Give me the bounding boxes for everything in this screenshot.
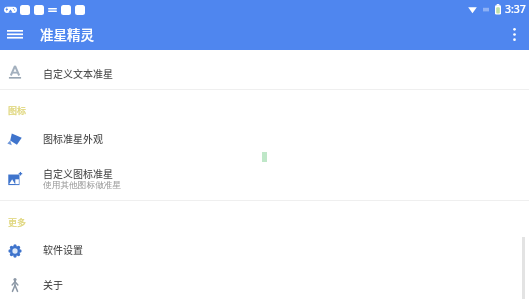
staticText: 图标准星外观 [43, 131, 103, 145]
staticText: 准星精灵 [40, 24, 94, 44]
staticText: 自定义图标准星 [43, 166, 113, 180]
button[interactable]: 自定义文本准星 [0, 52, 529, 90]
button[interactable]: 图标准星外观 [0, 120, 529, 156]
button[interactable]: Open navigation drawer [1, 20, 29, 48]
staticText: 软件设置 [43, 242, 83, 256]
button[interactable]: 关于 [0, 268, 529, 299]
staticText: 使用其他图标做准星 [43, 180, 122, 191]
staticText: 图标 [8, 104, 27, 117]
button[interactable]: More options [500, 20, 528, 48]
button[interactable]: 自定义图标准星 [0, 160, 529, 200]
staticText: 3:37 [505, 2, 526, 16]
staticText: 更多 [8, 216, 27, 229]
staticText: 关于 [43, 277, 63, 291]
button[interactable]: 软件设置 [0, 234, 529, 267]
staticText: 自定义文本准星 [43, 66, 113, 80]
